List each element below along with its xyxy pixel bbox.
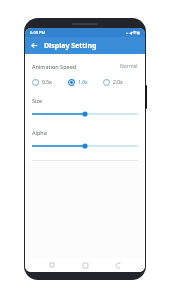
button[interactable]: Back bbox=[28, 39, 41, 52]
button[interactable]: 0.5x bbox=[32, 79, 68, 86]
staticText: 0.5x bbox=[42, 79, 52, 86]
button[interactable]: Home bbox=[79, 259, 91, 271]
staticText: Normal bbox=[120, 63, 138, 70]
button[interactable] bbox=[32, 142, 138, 150]
button[interactable]: 1.0x bbox=[68, 79, 103, 86]
staticText: 6:08 PM bbox=[30, 30, 46, 35]
staticText: 2.0x bbox=[113, 79, 123, 86]
button[interactable]: 2.0x bbox=[103, 79, 138, 86]
staticText: Alpha bbox=[32, 129, 47, 136]
button[interactable] bbox=[32, 110, 138, 118]
button[interactable]: Recents bbox=[46, 259, 58, 271]
staticText: Display Setting bbox=[44, 41, 97, 51]
button[interactable]: Animation Speed bbox=[32, 63, 138, 70]
staticText: 1.0x bbox=[78, 79, 88, 86]
button[interactable]: Back bbox=[112, 259, 124, 271]
staticText: Animation Speed bbox=[32, 63, 77, 70]
staticText: Size bbox=[32, 97, 43, 104]
